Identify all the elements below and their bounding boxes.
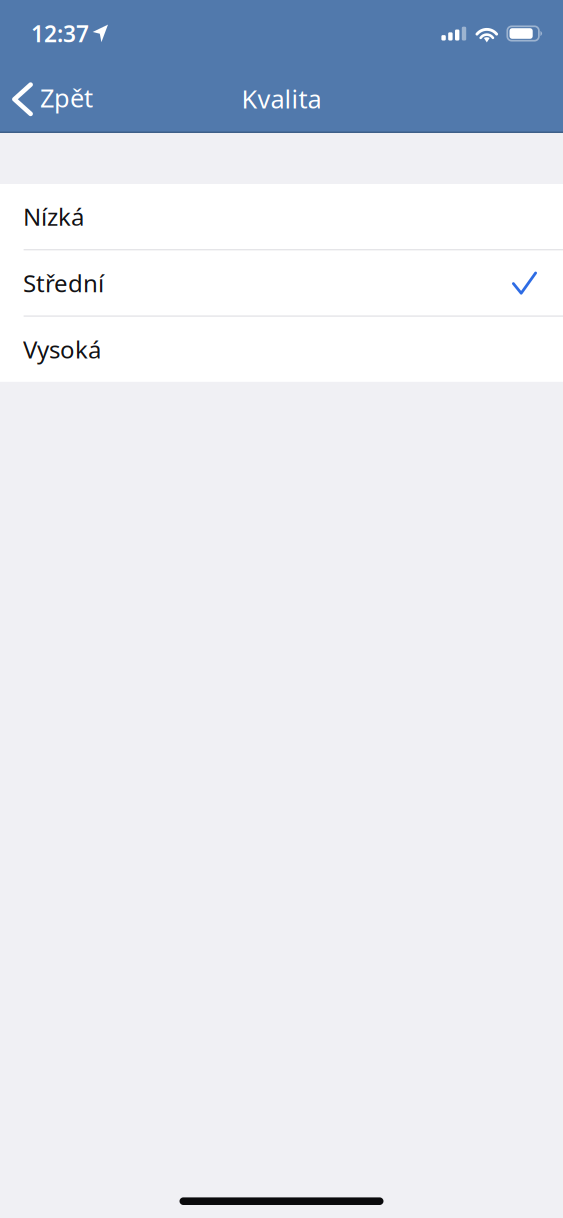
button[interactable]: Střední — [0, 250, 563, 315]
button[interactable]: Nízká — [0, 184, 563, 249]
staticText: Vysoká — [23, 333, 101, 365]
staticText: Zpět — [40, 81, 93, 114]
staticText: Kvalita — [241, 82, 321, 115]
button[interactable]: Vysoká — [0, 317, 563, 382]
staticText: 12:37 — [31, 18, 89, 48]
staticText: Střední — [23, 267, 104, 299]
button[interactable]: Zpět — [0, 69, 103, 129]
staticText: Nízká — [23, 201, 84, 232]
